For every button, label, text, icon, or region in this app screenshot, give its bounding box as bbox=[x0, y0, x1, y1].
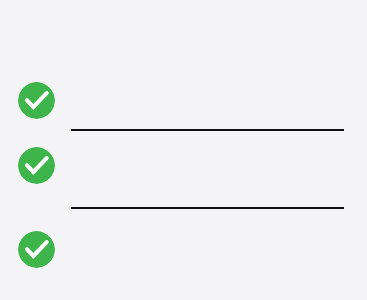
button[interactable]: Completed bbox=[18, 231, 55, 268]
button[interactable]: Completed bbox=[18, 147, 55, 184]
button[interactable]: Completed bbox=[18, 82, 55, 119]
